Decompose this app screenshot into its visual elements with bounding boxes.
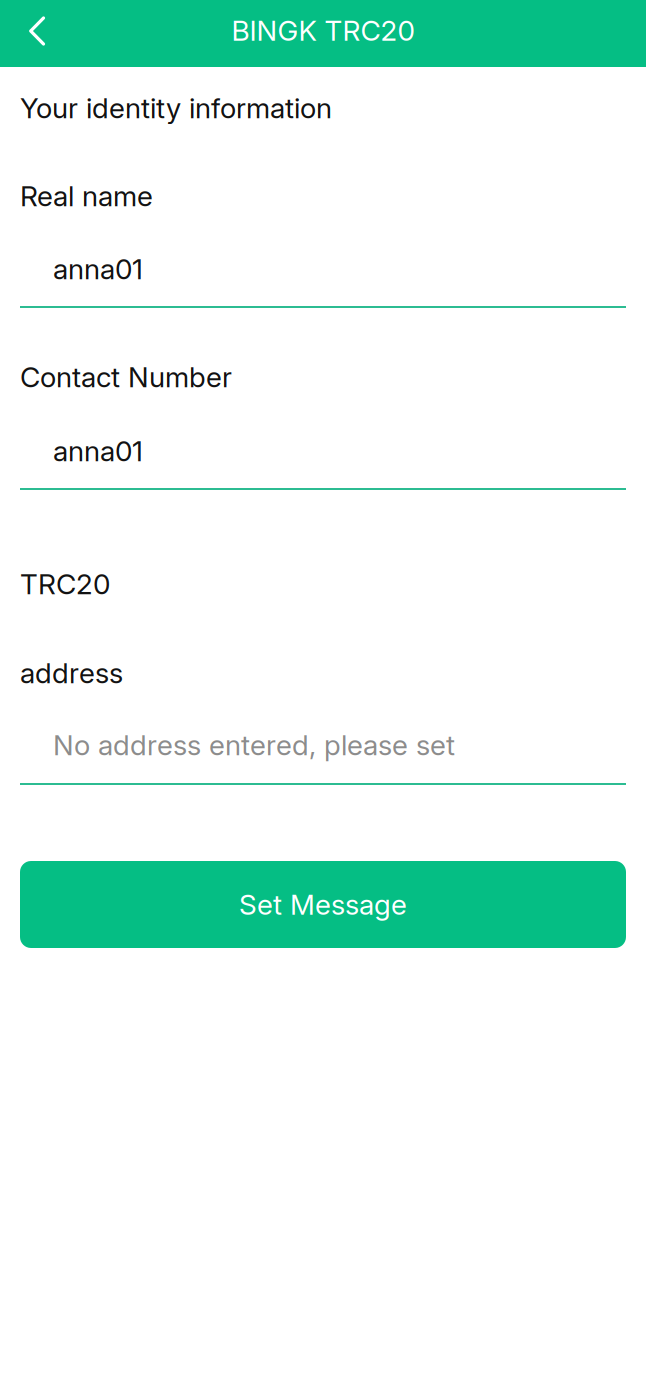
button[interactable]: Back: [0, 0, 60, 67]
button[interactable]: anna01: [20, 252, 626, 308]
button[interactable]: Set Message: [20, 861, 626, 948]
staticText: anna01: [53, 252, 143, 286]
staticText: Set Message: [239, 888, 407, 921]
staticText: No address entered, please set: [53, 728, 455, 762]
staticText: TRC20: [20, 567, 110, 601]
button[interactable]: anna01: [20, 434, 626, 490]
staticText: anna01: [53, 434, 143, 468]
button[interactable]: No address entered, please set: [20, 728, 626, 785]
staticText: Your identity information: [20, 91, 332, 125]
staticText: Contact Number: [20, 360, 232, 394]
staticText: BINGK TRC20: [231, 14, 414, 47]
staticText: Real name: [20, 179, 153, 213]
staticText: address: [20, 656, 123, 690]
